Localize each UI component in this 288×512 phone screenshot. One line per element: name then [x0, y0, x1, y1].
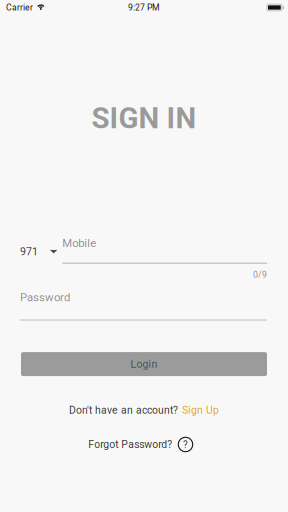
button[interactable]: Don't have an account?	[69, 404, 219, 416]
staticText: SIGN IN	[91, 101, 196, 135]
staticText: 971	[20, 245, 38, 258]
staticText: Don't have an account?	[69, 404, 178, 416]
staticText: Sign Up	[182, 404, 219, 416]
staticText: ?	[183, 439, 188, 451]
staticText: Carrier	[6, 2, 33, 13]
staticText: 0/9	[253, 270, 267, 280]
button[interactable]: Forgot Password?	[88, 437, 200, 452]
button[interactable]: 971	[20, 247, 62, 264]
staticText: 9:27 PM	[128, 2, 160, 13]
staticText: Mobile	[62, 236, 96, 250]
staticText: Password	[20, 291, 70, 304]
staticText: Login	[130, 358, 157, 370]
staticText: Forgot Password?	[88, 438, 172, 451]
button[interactable]: Login	[21, 352, 267, 376]
